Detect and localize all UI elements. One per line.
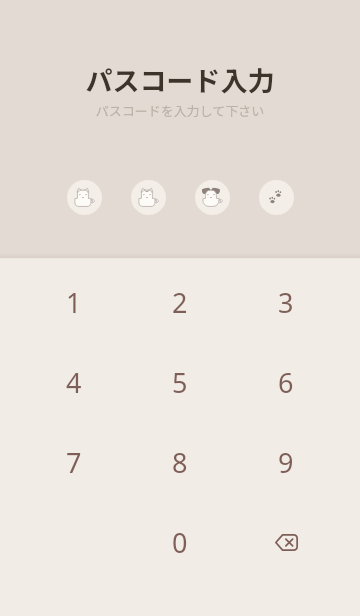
staticText: 5 bbox=[172, 364, 188, 401]
staticText: 1 bbox=[66, 284, 82, 321]
button[interactable]: 7 bbox=[21, 422, 127, 502]
staticText: 7 bbox=[66, 444, 82, 481]
button[interactable]: 5 bbox=[127, 342, 233, 422]
button[interactable]: 1 bbox=[21, 262, 127, 342]
staticText: パスコード入力 bbox=[0, 60, 360, 99]
button[interactable]: 8 bbox=[127, 422, 233, 502]
staticText: 4 bbox=[66, 364, 82, 401]
staticText: 9 bbox=[278, 444, 294, 481]
button[interactable]: 6 bbox=[233, 342, 339, 422]
button[interactable]: 4 bbox=[21, 342, 127, 422]
button[interactable]: 0 bbox=[127, 502, 233, 582]
staticText: 8 bbox=[172, 444, 188, 481]
button[interactable]: 2 bbox=[127, 262, 233, 342]
staticText: 0 bbox=[172, 524, 188, 561]
staticText: 2 bbox=[172, 284, 188, 321]
button[interactable]: Delete bbox=[233, 502, 339, 582]
button[interactable]: 9 bbox=[233, 422, 339, 502]
button[interactable]: 3 bbox=[233, 262, 339, 342]
staticText: 6 bbox=[278, 364, 294, 401]
staticText: パスコードを入力して下さい bbox=[0, 101, 360, 120]
staticText: 3 bbox=[278, 284, 294, 321]
